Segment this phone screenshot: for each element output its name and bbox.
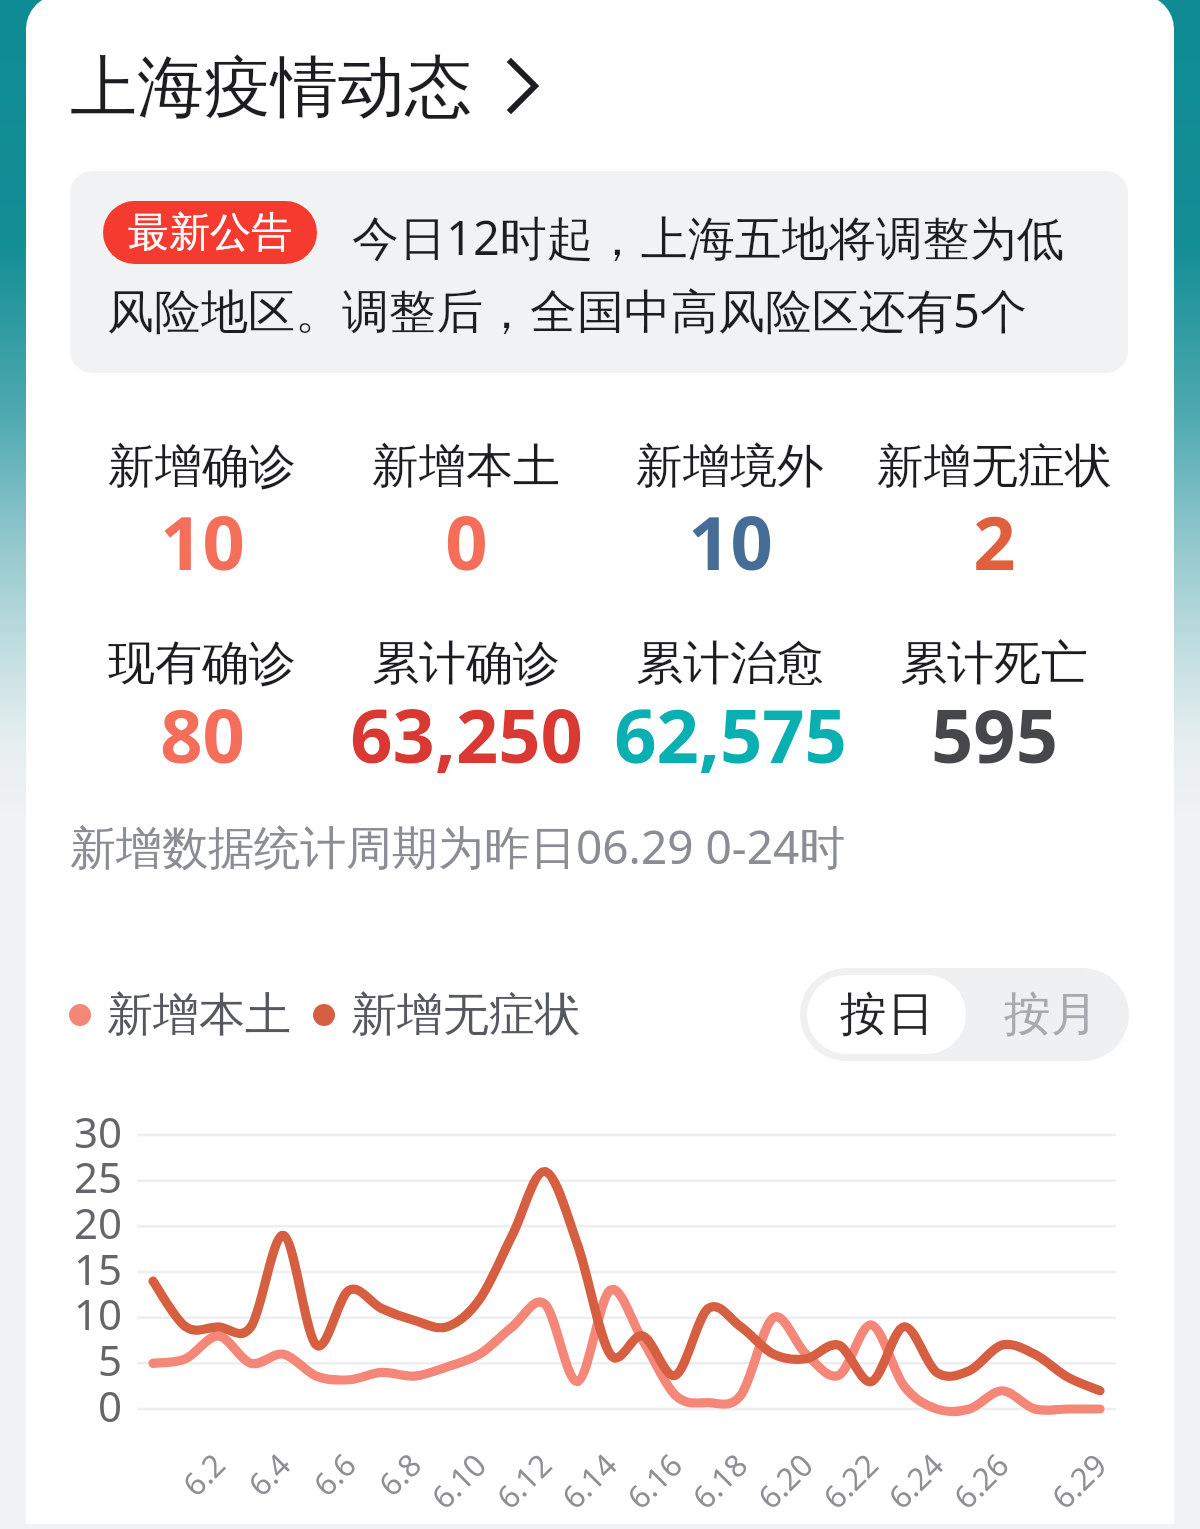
staticText: 10 (688, 491, 773, 592)
staticText: 按日 (840, 985, 934, 1044)
staticText: 累计确诊 (372, 634, 560, 693)
button[interactable]: 新增本土 (334, 437, 598, 595)
staticText: 累计死亡 (900, 634, 1088, 693)
staticText: 63,250 (350, 684, 583, 785)
button[interactable]: 现有确诊 (70, 634, 334, 788)
staticText: 新增本土 (107, 986, 291, 1044)
other: More (509, 57, 545, 117)
button[interactable]: 按日 (807, 975, 966, 1054)
button[interactable]: 最新公告 (70, 171, 1128, 373)
button[interactable]: 累计治愈 (598, 634, 862, 788)
staticText: 新增境外 (636, 437, 824, 496)
staticText: 现有确诊 (108, 634, 296, 693)
staticText: 上海疫情动态 (70, 45, 472, 129)
staticText: 最新公告 (128, 207, 292, 259)
staticText: 0 (445, 491, 488, 592)
staticText: 80 (160, 684, 245, 785)
staticText: 按月 (1004, 985, 1098, 1044)
staticText: 今日12时起，上海五地将调整为低 (352, 205, 1064, 269)
button[interactable]: 累计死亡 (862, 634, 1126, 788)
staticText: 新增本土 (372, 437, 560, 496)
button[interactable]: 新增无症状 (862, 437, 1126, 595)
staticText: 595 (931, 684, 1058, 785)
staticText: 10 (160, 491, 245, 592)
staticText: 新增无症状 (877, 437, 1112, 496)
staticText: 风险地区。调整后，全国中高风险区还有5个 (107, 278, 1027, 342)
staticText: 累计治愈 (636, 634, 824, 693)
staticText: 新增确诊 (108, 437, 296, 496)
button[interactable]: 上海疫情动态, open details (70, 45, 545, 129)
button[interactable]: 累计确诊 (334, 634, 598, 788)
staticText: 新增无症状 (351, 986, 581, 1044)
button[interactable]: 按月 (973, 975, 1129, 1054)
button[interactable]: 新增确诊 (70, 437, 334, 595)
staticText: 62,575 (614, 684, 847, 785)
button[interactable]: 新增境外 (598, 437, 862, 595)
staticText: 2 (973, 491, 1016, 592)
staticText: 新增数据统计周期为昨日06.29 0-24时 (70, 815, 846, 878)
